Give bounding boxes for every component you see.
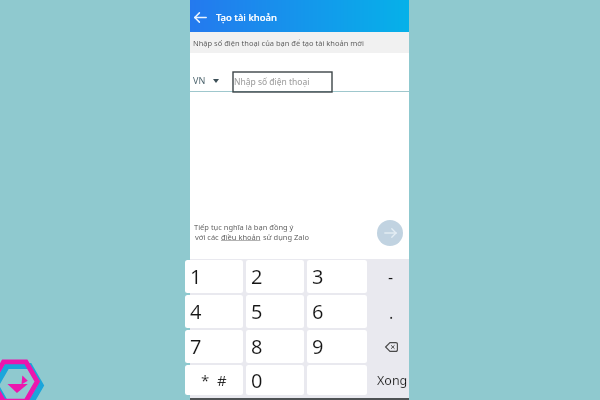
button[interactable]: 9 <box>307 330 367 363</box>
button[interactable]: - <box>369 260 409 293</box>
staticText: Nhập số điện thoại của bạn để tạo tài kh… <box>193 38 364 48</box>
other: Backspace <box>385 342 398 352</box>
staticText: * # <box>201 370 227 390</box>
button[interactable]: 3 <box>307 260 367 293</box>
button[interactable]: Back <box>190 5 210 29</box>
button[interactable]: * # <box>185 365 243 395</box>
staticText: 6 <box>312 298 324 325</box>
button[interactable]: 6 <box>307 295 367 328</box>
staticText: 5 <box>251 298 263 325</box>
staticText: Xong <box>377 372 408 389</box>
staticText: 3 <box>312 263 324 290</box>
staticText: Tạo tài khoản <box>216 11 277 24</box>
staticText: điều khoản <box>221 232 261 242</box>
staticText: 8 <box>251 333 263 360</box>
button[interactable]: 5 <box>246 295 304 328</box>
button[interactable]: 8 <box>246 330 304 363</box>
button[interactable]: 2 <box>246 260 304 293</box>
button[interactable]: 0 <box>246 365 304 395</box>
staticText: - <box>388 266 394 288</box>
button[interactable]: Backspace <box>369 330 409 363</box>
staticText: 0 <box>251 367 263 394</box>
button[interactable]: Continue <box>377 220 403 246</box>
button[interactable]: . <box>369 295 409 328</box>
button[interactable]: 7 <box>185 330 243 363</box>
staticText: Nhập số điện thoại <box>234 76 310 88</box>
staticText: 9 <box>312 333 324 360</box>
button[interactable]: Nhập số điện thoại <box>233 72 332 92</box>
staticText: 1 <box>190 263 202 290</box>
staticText: với các <box>195 232 221 242</box>
button[interactable]: Xong <box>369 365 409 395</box>
staticText: 7 <box>190 333 202 360</box>
button[interactable]: 4 <box>185 295 243 328</box>
staticText: . <box>389 302 394 324</box>
staticText: Tiếp tục nghĩa là bạn đồng ý <box>194 222 294 232</box>
staticText: VN <box>193 74 206 86</box>
button[interactable]: 1 <box>185 260 243 293</box>
staticText: 4 <box>190 298 202 325</box>
staticText: 2 <box>251 263 263 290</box>
staticText: sử dụng Zalo <box>261 232 309 242</box>
